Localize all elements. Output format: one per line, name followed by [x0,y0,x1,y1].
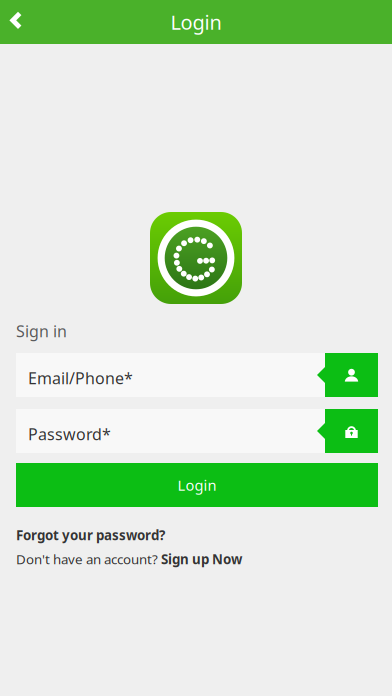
staticText: Sign up Now [161,550,242,568]
staticText: Login [170,9,221,35]
button[interactable]: Login [0,463,392,507]
button[interactable]: Forgot your password? [16,526,165,544]
button[interactable]: Back [0,0,44,44]
staticText: Email/Phone* [28,367,133,389]
staticText: Login [177,475,216,495]
staticText: Forgot your password? [16,526,165,544]
staticText: Sign in [16,320,67,342]
button[interactable]: Sign up Now [161,550,242,568]
staticText: Don't have an account? [16,550,161,568]
staticText: Password* [28,423,111,445]
